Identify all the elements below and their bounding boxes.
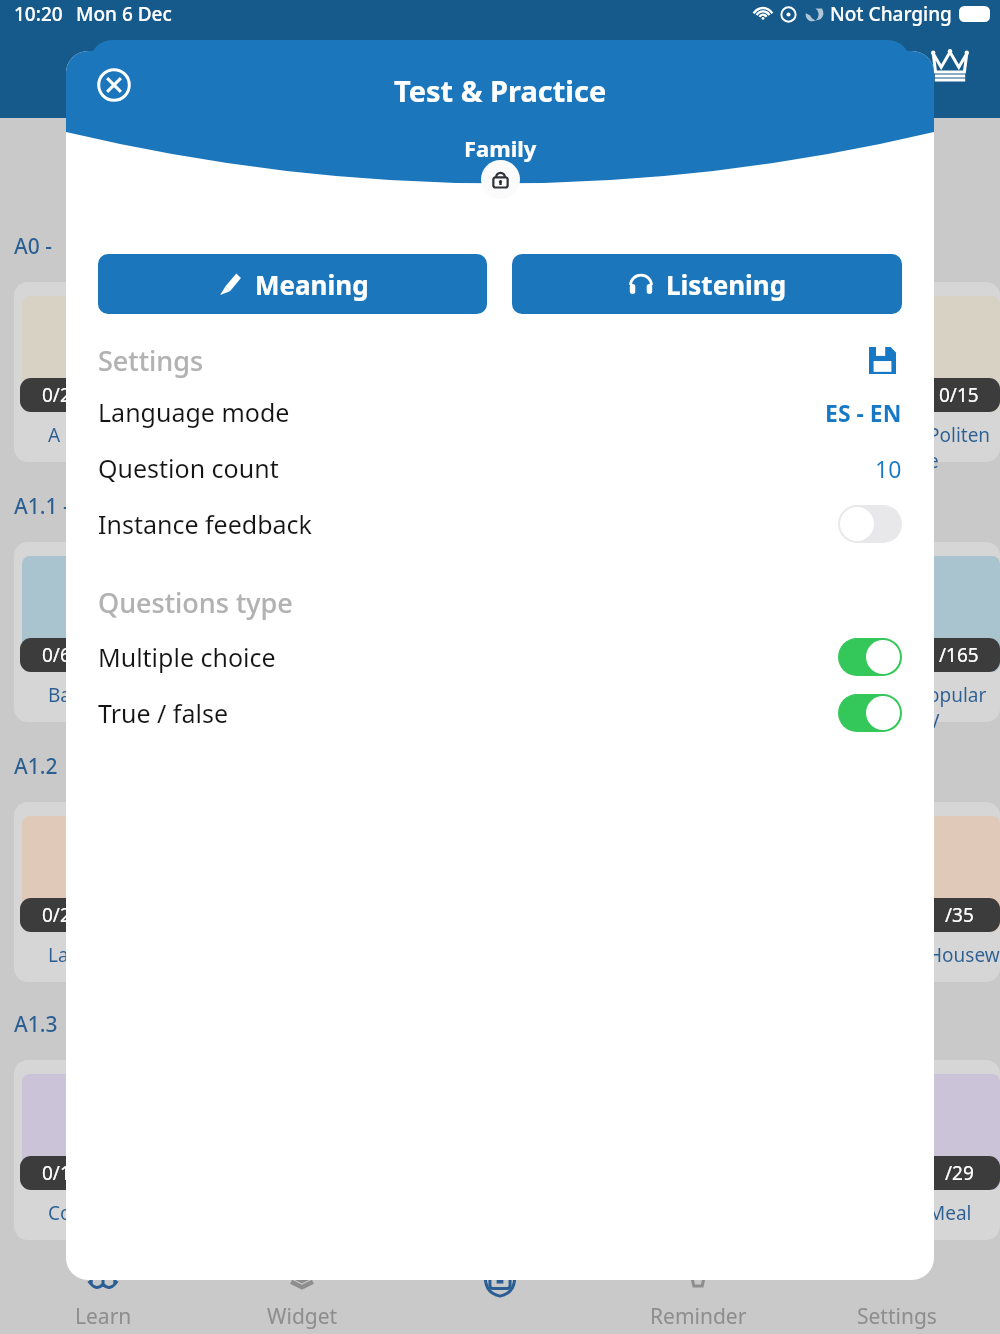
button[interactable]: Learn [8,1256,198,1331]
button[interactable]: Save [862,340,902,380]
button[interactable]: Close [97,68,131,102]
staticText: Politene [928,422,1000,474]
staticText: 0/2 [42,382,71,408]
staticText: Not Charging [830,1,952,27]
staticText: /29 [945,1160,974,1186]
button[interactable]: Meaning [98,254,487,314]
button[interactable]: Multiple choice [98,629,902,685]
button[interactable]: Widget [207,1256,397,1331]
staticText: True / false [98,696,228,730]
staticText: Mon 6 Dec [76,1,172,27]
staticText: Reminder [650,1302,747,1331]
staticText: Widget [267,1302,338,1331]
staticText: A1.2 [14,752,58,781]
button[interactable]: Reminder [603,1256,793,1331]
staticText: 0/2 [42,902,71,928]
button[interactable]: Home [405,1256,595,1302]
staticText: 0/6 [42,642,71,668]
staticText: A [48,422,61,448]
staticText: ES - EN [825,397,902,428]
staticText: Question count [98,451,279,485]
button[interactable]: True / false [98,685,902,741]
staticText: opular V [928,682,1000,734]
button[interactable]: Settings [802,1256,992,1331]
staticText: Meal [928,1200,972,1226]
staticText: Family [464,133,537,163]
staticText: A1.1 - [14,492,70,521]
staticText: Multiple choice [98,640,276,674]
button[interactable]: Locked [481,160,520,199]
staticText: Settings [857,1302,937,1331]
staticText: Settings [98,342,204,379]
button[interactable]: Disabled [838,505,902,543]
staticText: Questions type [98,584,293,621]
button[interactable]: Language mode [98,384,902,440]
staticText: 0/1 [42,1160,71,1186]
staticText: Meaning [255,267,369,302]
staticText: Test & Practice [394,71,607,110]
staticText: 0/15 [939,382,979,408]
staticText: Housew [928,942,1000,968]
button[interactable]: Enabled [838,694,902,732]
staticText: A0 - [14,232,52,261]
button[interactable]: Instance feedback [98,496,902,552]
button[interactable]: Listening [512,254,902,314]
button[interactable]: Question count [98,440,902,496]
staticText: 10:20 [14,1,63,27]
staticText: Instance feedback [98,507,312,541]
staticText: Learn [75,1302,132,1331]
staticText: La [48,942,69,968]
staticText: Language mode [98,395,290,429]
staticText: Basi [48,682,86,708]
staticText: 10 [875,453,902,484]
staticText: /35 [945,902,974,928]
staticText: /165 [939,642,979,668]
staticText: Com [48,1200,90,1226]
staticText: A1.3 [14,1010,58,1039]
staticText: Listening [666,267,787,302]
button[interactable]: Enabled [838,638,902,676]
